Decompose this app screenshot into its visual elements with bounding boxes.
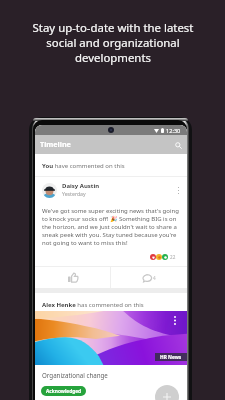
staticText: 4 — [153, 275, 156, 281]
button[interactable]: More options — [169, 315, 180, 326]
button[interactable]: Acknowledged — [41, 386, 86, 396]
staticText: Timeline — [40, 140, 71, 149]
staticText: 12:30 — [166, 127, 181, 134]
staticText: Organizational change — [42, 372, 108, 380]
staticText: Daisy Austin — [62, 182, 100, 190]
button[interactable]: HR News — [155, 353, 187, 361]
staticText: We've got some super exciting news that'… — [42, 207, 181, 247]
button[interactable]: Search — [172, 139, 184, 151]
staticText: Alex Henke has commented on this — [42, 301, 144, 309]
button[interactable]: Comment — [111, 267, 187, 288]
button[interactable]: Create post — [155, 385, 179, 400]
staticText: HR News — [160, 354, 182, 360]
staticText: Yesterday — [62, 191, 86, 198]
staticText: Stay up-to-date with the latest social a… — [27, 20, 199, 65]
button[interactable]: Like — [35, 267, 110, 288]
staticText: 22 — [170, 254, 176, 260]
button[interactable]: More options — [173, 185, 184, 196]
staticText: Acknowledged — [46, 388, 82, 394]
staticText: You have commented on this — [42, 162, 125, 170]
